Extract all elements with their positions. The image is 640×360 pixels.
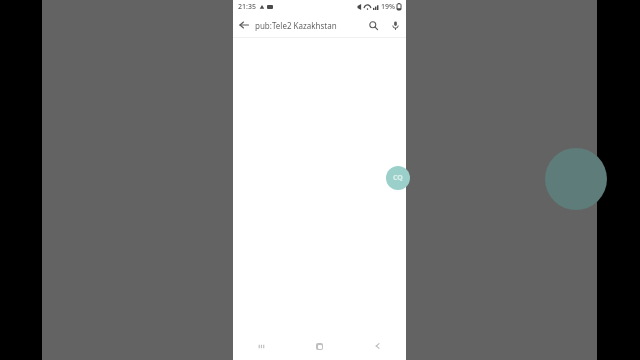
staticText: 21:35 bbox=[238, 2, 256, 12]
button[interactable]: Voice search bbox=[384, 14, 406, 36]
button[interactable]: Search bbox=[362, 14, 384, 36]
button[interactable]: Back bbox=[348, 332, 406, 360]
button[interactable]: Back bbox=[233, 14, 255, 36]
button[interactable]: Recent apps bbox=[233, 332, 290, 360]
button[interactable]: pub:Tele2 Kazakhstan bbox=[255, 13, 362, 37]
staticText: pub:Tele2 Kazakhstan bbox=[255, 20, 337, 31]
button[interactable]: Home bbox=[290, 332, 348, 360]
staticText: CQ bbox=[393, 173, 403, 183]
staticText: 19% bbox=[381, 2, 395, 12]
button[interactable]: Badge bbox=[386, 166, 410, 190]
